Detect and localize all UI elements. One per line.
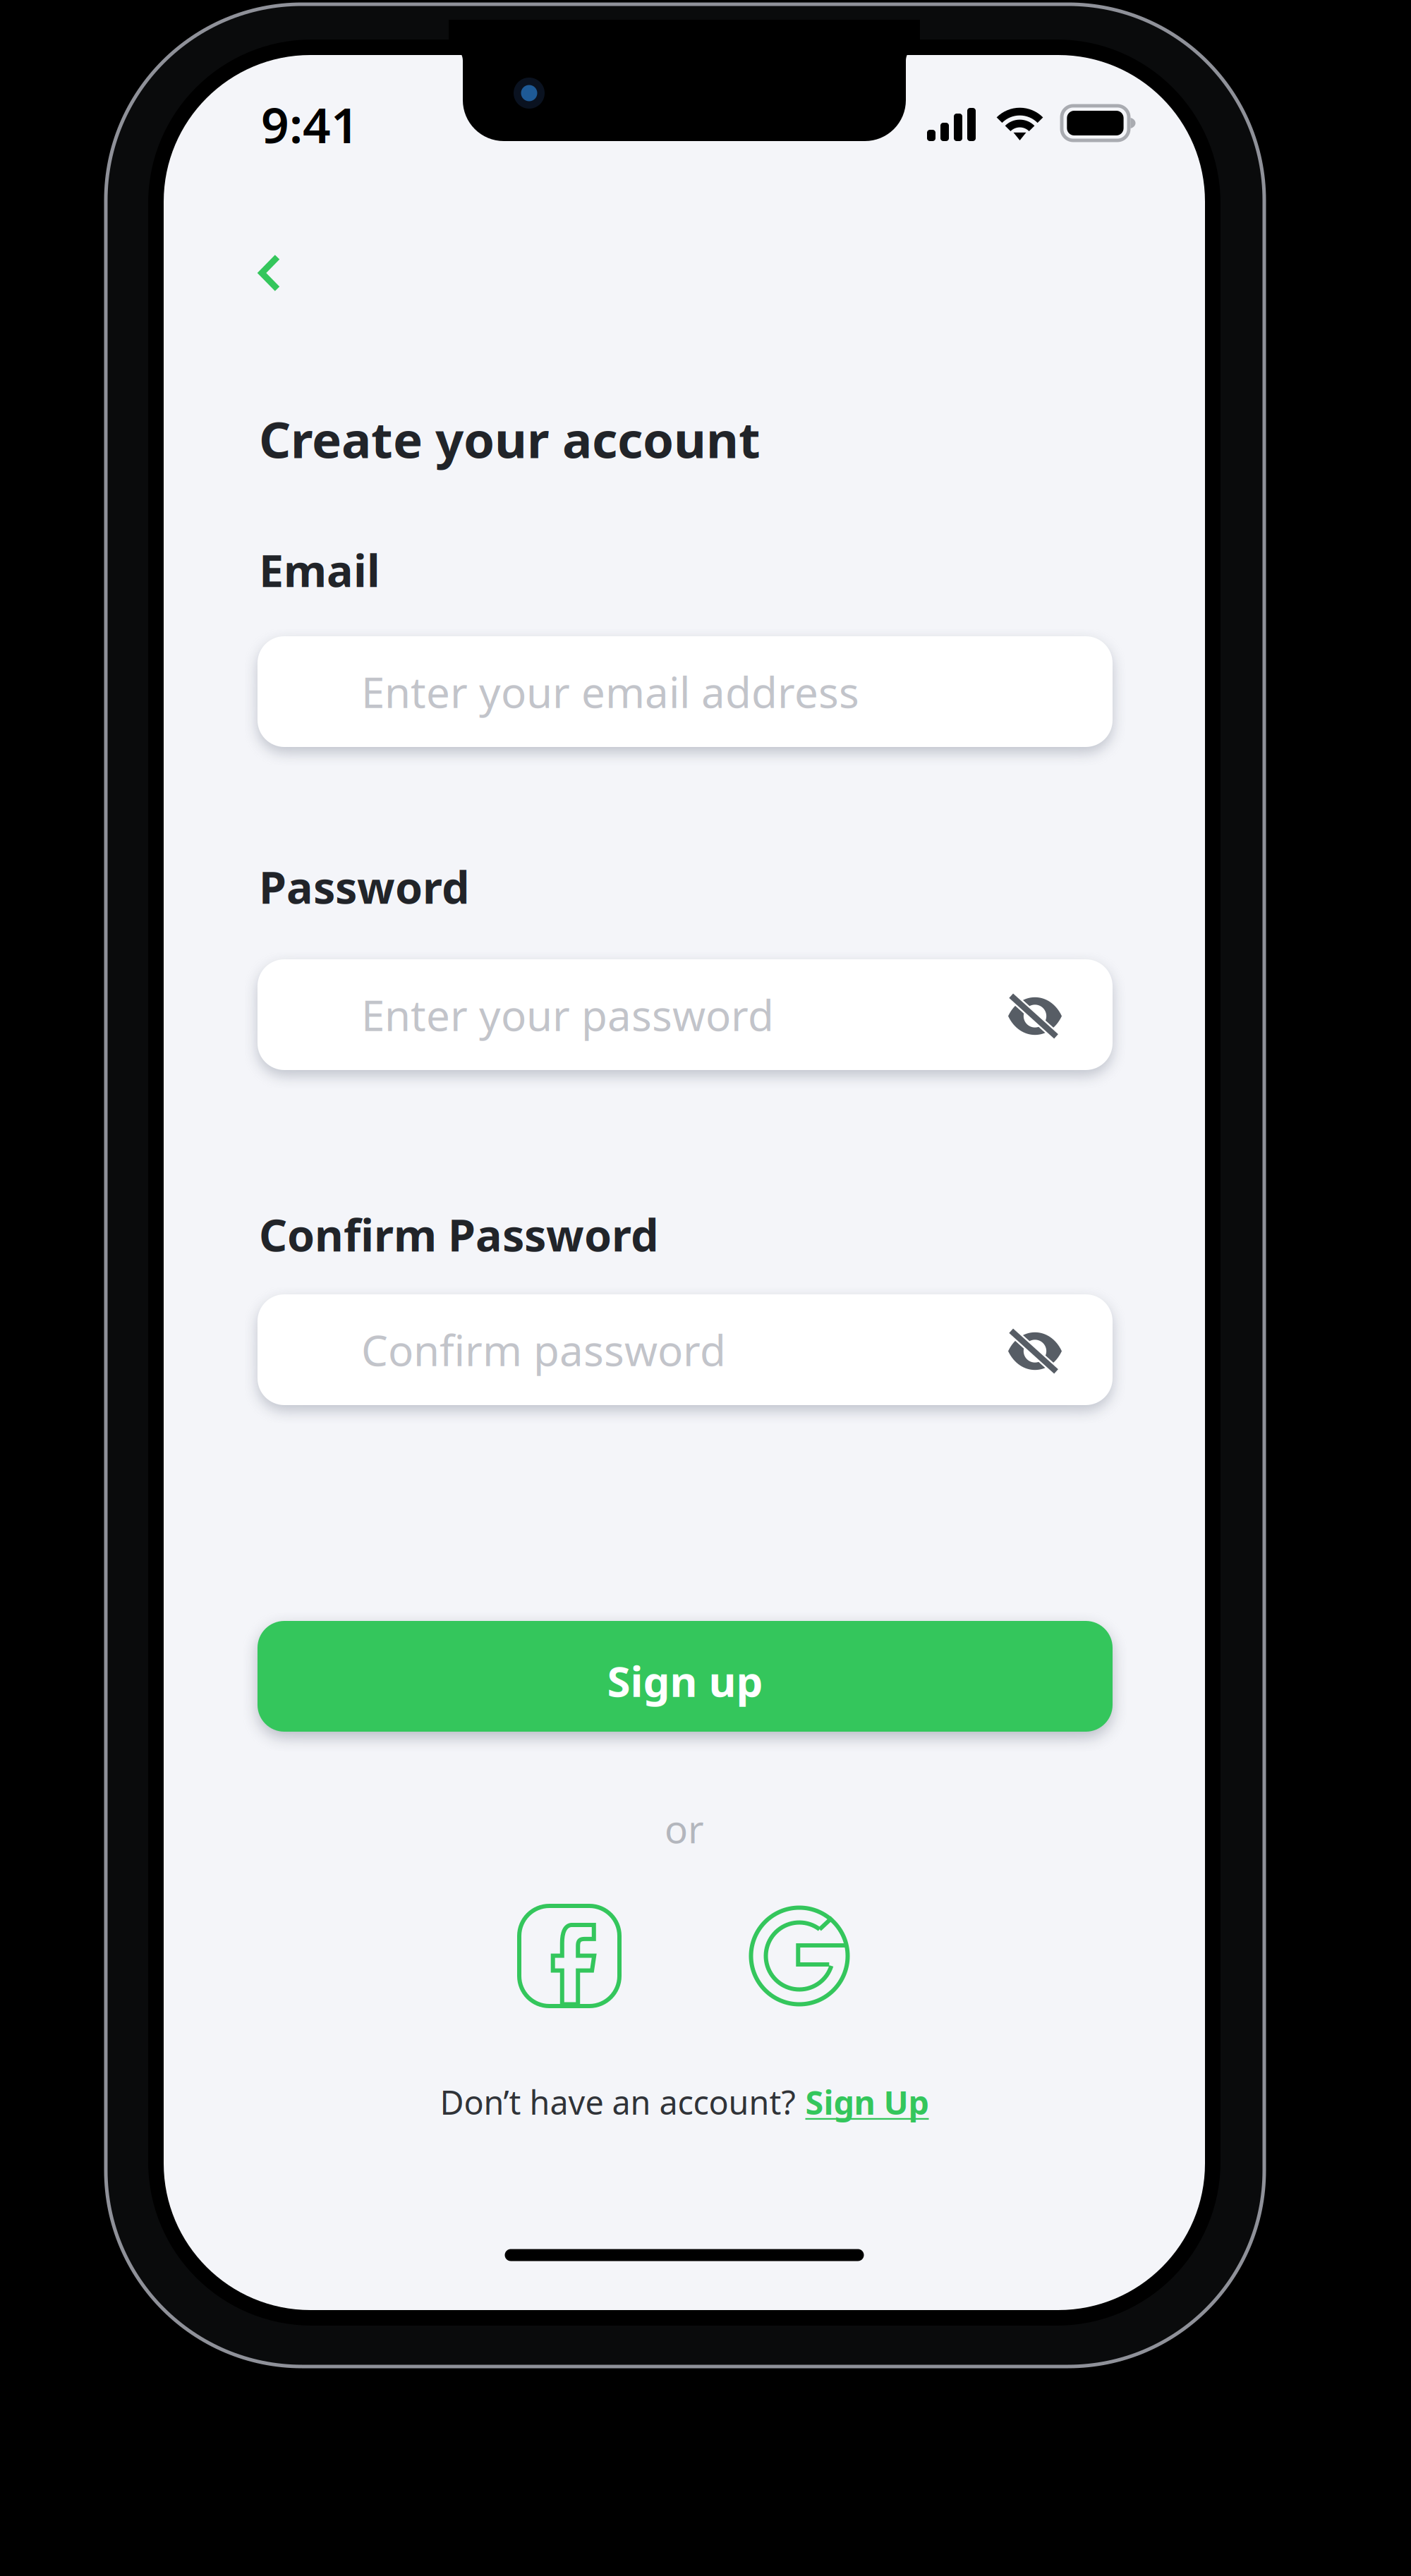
staticText: Create your account (259, 406, 761, 472)
staticText: Password (259, 857, 470, 916)
staticText: Enter your password (361, 987, 774, 1043)
button[interactable]: Enter your password (258, 959, 1113, 1070)
button[interactable]: Back (236, 239, 303, 307)
staticText: Sign up (607, 1652, 763, 1709)
button[interactable]: Continue with Google (743, 1900, 856, 2012)
button[interactable]: Confirm password (258, 1294, 1113, 1405)
button[interactable]: Continue with Facebook (513, 1900, 626, 2012)
staticText: or (665, 1803, 704, 1854)
staticText: Email (259, 541, 380, 599)
button[interactable]: Enter your email address (258, 636, 1113, 747)
button[interactable]: Don’t have an account? (426, 2070, 943, 2134)
staticText: Confirm Password (259, 1205, 659, 1264)
staticText: Enter your email address (361, 664, 859, 720)
staticText: Don’t have an account? (440, 2080, 795, 2124)
staticText: 9:41 (261, 92, 359, 157)
button[interactable]: Sign up (258, 1621, 1113, 1732)
staticText: Sign Up (805, 2080, 929, 2124)
staticText: Confirm password (361, 1322, 726, 1378)
